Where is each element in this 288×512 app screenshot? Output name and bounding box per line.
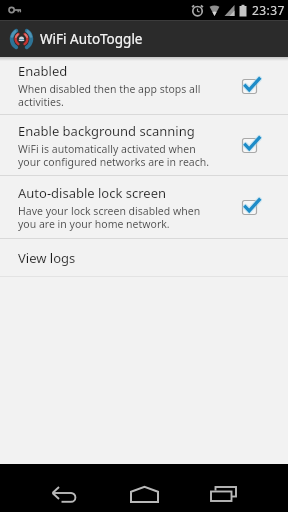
button[interactable]: [242, 76, 262, 96]
button[interactable]: Auto-disable lock screen: [0, 176, 288, 238]
button[interactable]: Enable background scanning: [0, 115, 288, 175]
staticText: 23:37: [252, 2, 285, 18]
staticText: Enabled: [18, 62, 68, 80]
button[interactable]: [130, 486, 159, 503]
staticText: When disabled then the app stops all act…: [18, 82, 201, 109]
button[interactable]: [242, 135, 262, 155]
staticText: Have your lock screen disabled when you …: [18, 204, 201, 231]
button[interactable]: [210, 486, 237, 502]
button[interactable]: Enabled: [0, 57, 288, 114]
button[interactable]: WiFi AutoToggle: [0, 20, 288, 57]
button[interactable]: [242, 197, 262, 217]
staticText: Auto-disable lock screen: [18, 184, 167, 202]
staticText: View logs: [18, 249, 76, 267]
staticText: WiFi AutoToggle: [40, 30, 143, 48]
staticText: Enable background scanning: [18, 122, 195, 140]
button[interactable]: [51, 486, 78, 503]
button[interactable]: View logs: [0, 239, 288, 276]
staticText: WiFi is automatically activated when you…: [18, 142, 210, 169]
